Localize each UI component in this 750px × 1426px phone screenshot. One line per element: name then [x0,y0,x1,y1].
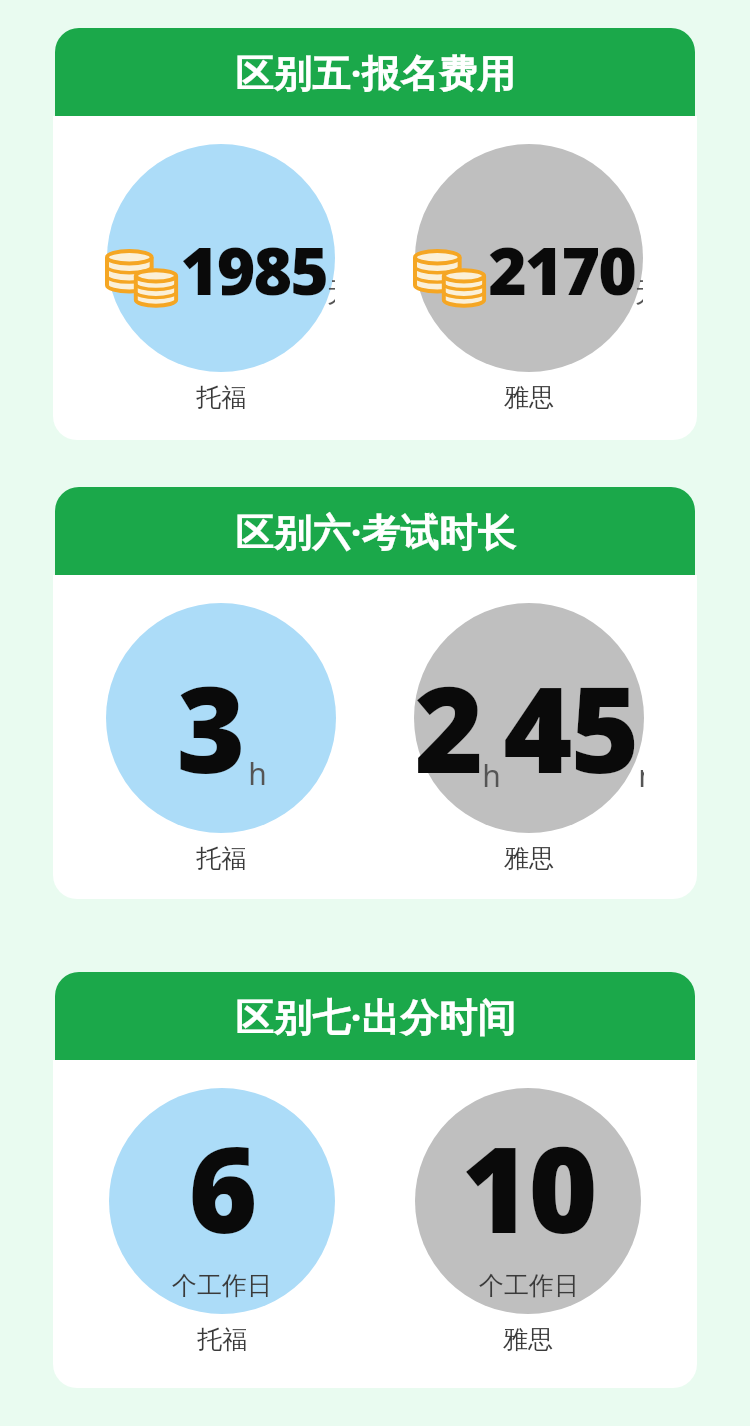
staticText: 托福 [197,1324,247,1355]
staticText: h [482,755,501,796]
staticText: 个工作日 [479,1270,579,1301]
staticText: 托福 [196,382,246,413]
staticText: 雅思 [504,843,554,874]
other: Fee [415,248,487,310]
button[interactable]: 6 [53,972,697,1388]
staticText: 雅思 [503,1324,553,1355]
staticText: 1985 [180,224,327,314]
staticText: 10 [461,1107,596,1268]
staticText: 区别六·考试时长 [235,505,516,557]
staticText: 托福 [196,843,246,874]
staticText: 2 [414,647,482,808]
staticText: 6 [188,1107,256,1268]
button[interactable]: Fee [53,28,697,440]
staticText: 个工作日 [172,1270,272,1301]
staticText: h [248,753,267,794]
staticText: 雅思 [504,382,554,413]
staticText: 区别五·报名费用 [235,46,516,98]
staticText: 3 [176,647,244,808]
staticText: 元 [635,275,643,310]
button[interactable]: 3 [53,487,697,899]
staticText: 45 [503,647,638,808]
other: Fee [107,248,179,310]
staticText: 元 [327,275,335,310]
staticText: 2170 [488,224,635,314]
staticText: 区别七·出分时间 [235,990,516,1042]
staticText: min [638,755,644,796]
